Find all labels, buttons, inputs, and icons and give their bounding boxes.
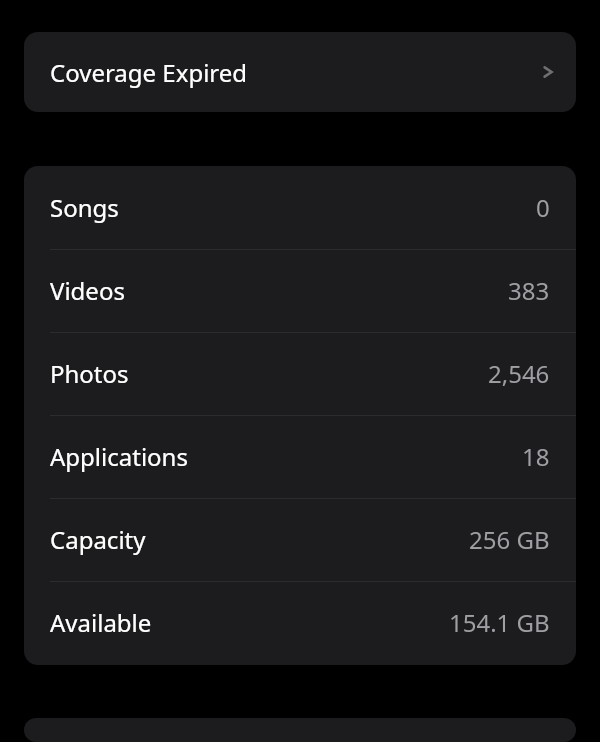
staticText: Photos <box>50 357 129 390</box>
button[interactable]: Capacity <box>24 498 576 581</box>
staticText: Songs <box>50 191 119 224</box>
button[interactable]: Songs <box>24 166 576 249</box>
staticText: 18 <box>522 440 550 473</box>
staticText: Available <box>50 606 152 639</box>
staticText: Videos <box>50 274 125 307</box>
staticText: 256 GB <box>469 523 550 556</box>
staticText: Capacity <box>50 523 146 556</box>
button[interactable]: Photos <box>24 332 576 415</box>
button[interactable]: Available <box>24 581 576 664</box>
staticText: 383 <box>508 274 550 307</box>
other: Open coverage details <box>540 63 558 81</box>
button[interactable]: Videos <box>24 249 576 332</box>
button[interactable]: Coverage Expired <box>24 32 576 112</box>
staticText: 2,546 <box>488 357 550 390</box>
staticText: Coverage Expired <box>50 56 248 89</box>
button[interactable]: Applications <box>24 415 576 498</box>
staticText: 154.1 GB <box>449 606 550 639</box>
staticText: Applications <box>50 440 188 473</box>
staticText: 0 <box>536 191 550 224</box>
